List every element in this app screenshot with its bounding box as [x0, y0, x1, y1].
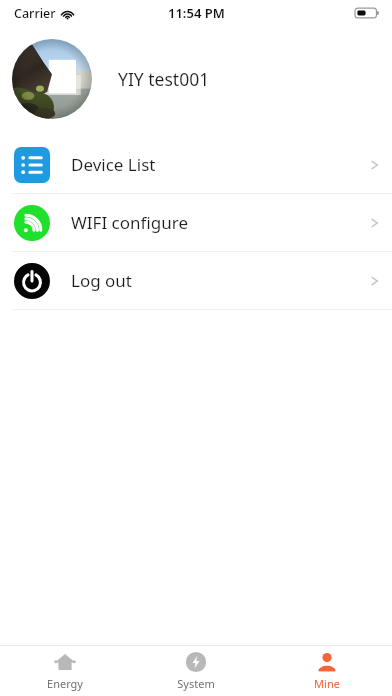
button[interactable]: System: [130, 646, 261, 696]
staticText: WIFI configure: [71, 211, 188, 234]
button[interactable]: Mine: [261, 646, 392, 696]
button[interactable]: WIFI configure: [0, 194, 392, 251]
staticText: Mine: [314, 676, 340, 691]
button[interactable]: Log out: [0, 252, 392, 309]
button[interactable]: YIY test001: [0, 36, 392, 122]
staticText: Energy: [47, 676, 83, 691]
button[interactable]: Energy: [0, 646, 130, 696]
button[interactable]: Device List: [0, 136, 392, 193]
staticText: Carrier: [14, 5, 56, 22]
staticText: Log out: [71, 269, 132, 292]
staticText: YIY test001: [118, 67, 210, 91]
staticText: 11:54 PM: [168, 4, 225, 22]
staticText: Device List: [71, 153, 156, 176]
staticText: System: [177, 676, 215, 691]
